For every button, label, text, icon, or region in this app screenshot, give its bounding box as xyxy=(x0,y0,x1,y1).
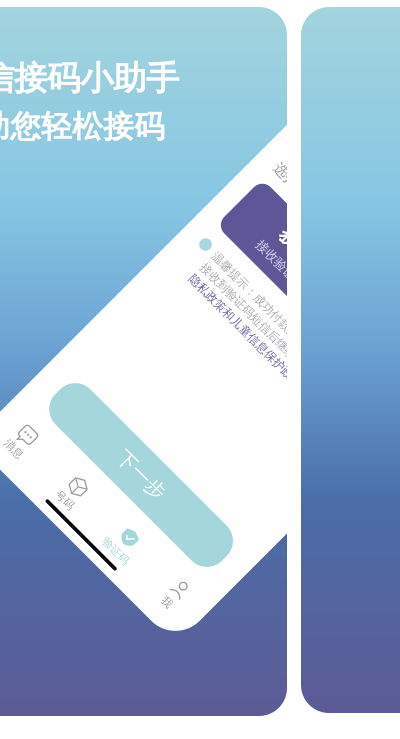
staticText: United States(+1) xyxy=(127,98,382,137)
staticText: 选择用于接收短信的号码 xyxy=(127,177,347,202)
staticText: 帮助您轻松接码 xyxy=(0,108,165,146)
staticText: 接收验证码短信费用: $0.5/条 xyxy=(184,268,400,291)
staticText: 温馨提示：成功付款的虚拟号码可以在 xyxy=(152,324,400,344)
staticText: 验证码 xyxy=(321,702,366,720)
staticText: 短信接码小助手 xyxy=(0,58,179,99)
staticText: 接收到验证码短信后继续使用本服务 xyxy=(152,346,400,366)
staticText: 消息 xyxy=(133,702,163,720)
staticText: 隐私政策和儿童信息保护政策 xyxy=(152,368,360,387)
button[interactable]: 下一步 xyxy=(99,581,400,648)
staticText: 地区 xyxy=(127,64,167,88)
button[interactable]: 号码 xyxy=(197,671,294,720)
staticText: 下一步 xyxy=(254,598,335,631)
button[interactable]: 获取一个新号码 xyxy=(99,216,400,304)
staticText: 获取一个新号码 xyxy=(196,229,392,263)
button[interactable]: 消息 xyxy=(99,671,197,720)
staticText: 号码 xyxy=(231,702,261,720)
button[interactable]: 我 xyxy=(392,671,400,720)
button[interactable]: 验证码 xyxy=(294,671,392,720)
staticText: 接码 xyxy=(127,0,229,36)
